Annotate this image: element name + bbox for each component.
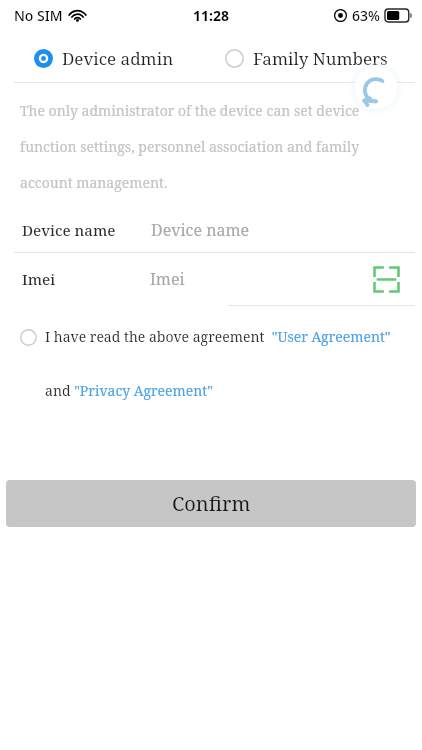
button[interactable]: I have read the above agreement "User Ag…	[45, 327, 408, 400]
staticText: Device name	[151, 219, 250, 241]
staticText: 63%	[352, 6, 380, 25]
staticText: Family Numbers	[253, 47, 388, 70]
button[interactable]: Scan IMEI barcode	[371, 264, 401, 294]
staticText: 11:28	[193, 6, 229, 25]
staticText: Device name	[22, 220, 116, 240]
button[interactable]: Family Numbers	[225, 47, 388, 70]
staticText: Confirm	[172, 490, 251, 517]
staticText: The only administrator of the device can…	[20, 101, 402, 192]
staticText: No SIM	[14, 6, 63, 25]
button[interactable]: Device admin	[34, 47, 174, 70]
staticText: Device admin	[62, 47, 174, 70]
button[interactable]: Confirm	[6, 480, 416, 527]
button[interactable]: Undo	[348, 60, 404, 116]
staticText: Imei	[22, 269, 56, 289]
staticText: Imei	[150, 268, 185, 290]
button[interactable]: Accept agreement	[20, 329, 37, 346]
button[interactable]: Device name	[0, 208, 422, 252]
